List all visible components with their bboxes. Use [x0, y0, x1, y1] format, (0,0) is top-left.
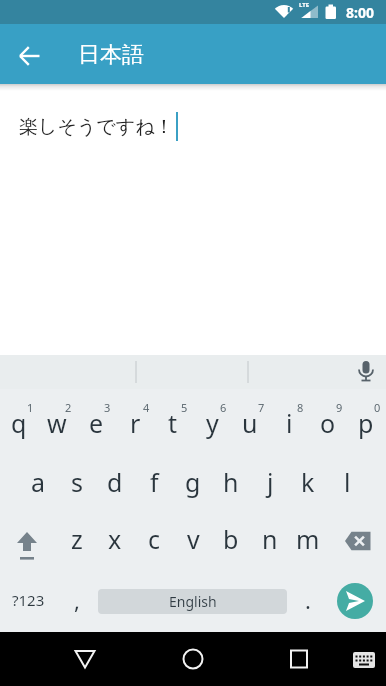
staticText: n: [262, 522, 278, 556]
staticText: .: [305, 585, 311, 615]
staticText: 8:00: [346, 3, 374, 21]
button[interactable]: [8, 35, 50, 77]
button[interactable]: [337, 583, 373, 619]
button[interactable]: [277, 637, 321, 681]
staticText: 3: [104, 400, 111, 414]
button[interactable]: [338, 526, 380, 556]
staticText: 楽しそうですね！: [19, 115, 174, 139]
button[interactable]: ?123: [9, 583, 47, 617]
staticText: ,: [74, 585, 80, 615]
staticText: w: [47, 406, 67, 440]
button[interactable]: x: [96, 522, 134, 556]
button[interactable]: h: [212, 465, 250, 499]
button[interactable]: k: [289, 465, 327, 499]
button[interactable]: l: [328, 465, 366, 499]
staticText: l: [344, 465, 351, 499]
staticText: y: [206, 406, 219, 440]
staticText: u: [242, 406, 258, 440]
button[interactable]: e: [77, 406, 115, 440]
button[interactable]: y: [193, 406, 231, 440]
staticText: r: [130, 406, 141, 440]
staticText: b: [223, 522, 239, 556]
staticText: f: [150, 465, 159, 499]
staticText: q: [11, 406, 27, 440]
button[interactable]: q: [0, 406, 38, 440]
button[interactable]: t: [154, 406, 192, 440]
button[interactable]: 日本語: [78, 41, 168, 69]
button[interactable]: b: [212, 522, 250, 556]
button[interactable]: i: [270, 406, 308, 440]
button[interactable]: [63, 637, 107, 681]
button[interactable]: r: [116, 406, 154, 440]
staticText: 0: [374, 400, 381, 414]
button[interactable]: [171, 637, 215, 681]
staticText: 日本語: [78, 41, 144, 69]
staticText: 1: [27, 400, 34, 414]
button[interactable]: s: [58, 465, 96, 499]
staticText: v: [187, 522, 200, 556]
button[interactable]: m: [289, 522, 327, 556]
button[interactable]: [6, 524, 50, 564]
staticText: 6: [220, 400, 227, 414]
staticText: 8: [297, 400, 304, 414]
button[interactable]: j: [251, 465, 289, 499]
button[interactable]: [352, 357, 382, 387]
staticText: s: [71, 465, 83, 499]
staticText: d: [107, 465, 123, 499]
staticText: English: [169, 592, 217, 611]
staticText: h: [223, 465, 239, 499]
button[interactable]: p: [347, 406, 385, 440]
button[interactable]: z: [58, 522, 96, 556]
button[interactable]: a: [19, 465, 57, 499]
button[interactable]: ,: [58, 583, 96, 617]
staticText: k: [301, 465, 315, 499]
staticText: j: [267, 465, 274, 499]
button[interactable]: c: [135, 522, 173, 556]
staticText: p: [358, 406, 374, 440]
staticText: 2: [65, 400, 72, 414]
button[interactable]: o: [309, 406, 347, 440]
staticText: a: [31, 465, 46, 499]
staticText: 7: [258, 400, 265, 414]
staticText: i: [286, 406, 293, 440]
button[interactable]: d: [96, 465, 134, 499]
button[interactable]: u: [231, 406, 269, 440]
staticText: 9: [336, 400, 343, 414]
staticText: z: [71, 522, 83, 556]
button[interactable]: v: [174, 522, 212, 556]
staticText: m: [296, 522, 320, 556]
staticText: ?123: [12, 590, 45, 610]
staticText: LTE: [299, 1, 310, 9]
button[interactable]: [348, 644, 380, 670]
button[interactable]: n: [251, 522, 289, 556]
button[interactable]: .: [289, 583, 327, 617]
staticText: c: [148, 522, 161, 556]
button[interactable]: w: [38, 406, 76, 440]
button[interactable]: f: [135, 465, 173, 499]
staticText: e: [89, 406, 104, 440]
staticText: o: [320, 406, 336, 440]
button[interactable]: English: [98, 589, 287, 614]
button[interactable]: g: [174, 465, 212, 499]
staticText: x: [108, 522, 122, 556]
staticText: 4: [143, 400, 150, 414]
staticText: 5: [181, 400, 188, 414]
staticText: g: [185, 465, 201, 499]
staticText: t: [168, 406, 178, 440]
